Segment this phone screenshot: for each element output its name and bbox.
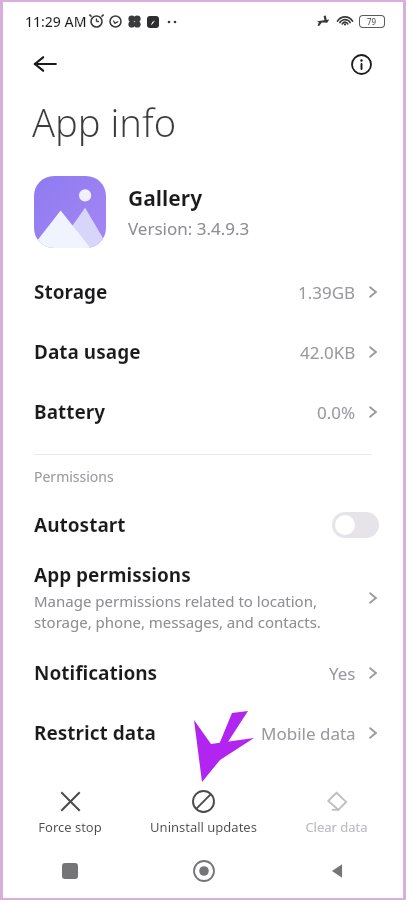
staticText: Version: 3.4.9.3 (128, 217, 250, 240)
staticText: Autostart (34, 512, 126, 538)
staticText: Mobile data (261, 722, 356, 745)
staticText: Gallery (128, 184, 203, 213)
button[interactable]: Clear data (270, 782, 403, 844)
staticText: 42.0KB (300, 341, 356, 364)
staticText: 1.39GB (298, 281, 356, 304)
button[interactable]: Home (137, 844, 270, 898)
staticText: Yes (329, 662, 356, 685)
staticText: 11:29 AM (25, 12, 87, 31)
staticText: Battery (34, 399, 106, 425)
button[interactable]: Data usage (3, 322, 403, 382)
button[interactable]: Back (270, 844, 403, 898)
button[interactable]: Restrict data (3, 703, 403, 763)
staticText: App info (32, 96, 177, 148)
staticText: Storage (34, 279, 108, 305)
staticText: Permissions (34, 467, 114, 486)
staticText: Restrict data (34, 720, 156, 746)
staticText: Force stop (38, 818, 102, 836)
button[interactable]: App permissions (3, 554, 403, 643)
button[interactable]: Notifications (3, 643, 403, 703)
button[interactable]: Uninstall updates (137, 782, 270, 844)
button[interactable]: Storage (3, 262, 403, 322)
staticText: App permissions (34, 562, 191, 588)
button[interactable]: Battery (3, 382, 403, 442)
staticText: Notifications (34, 660, 158, 686)
staticText: 0.0% (317, 401, 356, 424)
button[interactable]: Force stop (3, 782, 137, 844)
button[interactable]: Autostart (3, 496, 403, 554)
staticText: Data usage (34, 339, 141, 365)
button[interactable]: App details info (341, 44, 381, 84)
staticText: Clear data (305, 818, 368, 836)
staticText: 79 (367, 16, 377, 27)
button[interactable]: Back (25, 44, 65, 84)
staticText: Manage permissions related to location, … (34, 591, 355, 633)
button[interactable]: Recent apps (3, 844, 137, 898)
staticText: Uninstall updates (150, 818, 257, 836)
